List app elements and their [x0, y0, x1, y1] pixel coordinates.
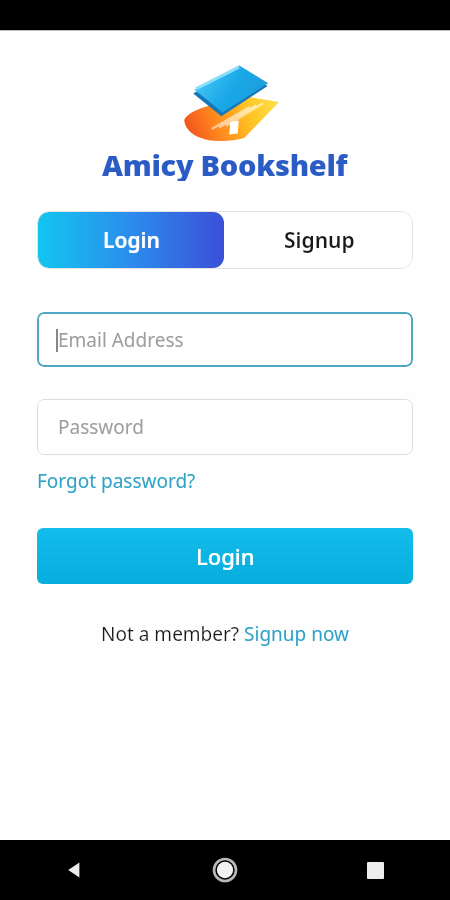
button[interactable]: Home: [150, 840, 300, 900]
button[interactable]: Not a member? Signup now: [101, 621, 349, 647]
button[interactable]: Signup: [225, 211, 413, 269]
staticText: Login: [196, 541, 255, 571]
button[interactable]: Recent apps: [300, 840, 450, 900]
staticText: Forgot password?: [37, 468, 196, 494]
button[interactable]: Login: [38, 212, 224, 268]
staticText: Email Address: [58, 327, 184, 353]
button[interactable]: Password: [37, 399, 413, 455]
staticText: Password: [58, 414, 144, 440]
staticText: Amicy Bookshelf: [102, 145, 348, 181]
button[interactable]: Login: [37, 528, 413, 584]
staticText: Login: [103, 226, 160, 255]
button[interactable]: Back: [0, 840, 150, 900]
staticText: Signup: [284, 226, 355, 255]
button[interactable]: Email Address: [37, 312, 413, 367]
button[interactable]: Forgot password?: [37, 467, 196, 495]
staticText: Not a member? Signup now: [101, 621, 349, 647]
